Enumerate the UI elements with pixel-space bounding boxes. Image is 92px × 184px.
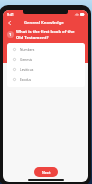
button[interactable]: Leviticus [7,64,85,74]
staticText: General Knowledge [24,20,64,26]
staticText: Numbers [20,47,35,51]
button[interactable]: Numbers [7,44,85,54]
staticText: Next [42,170,51,175]
staticText: Leviticus [20,67,34,71]
staticText: 1 [9,32,12,37]
button[interactable]: Genesis [7,54,85,64]
button[interactable]: Exodus [7,74,85,84]
staticText: 9:41 [7,12,14,17]
staticText: Exodus [20,77,32,81]
staticText: Genesis [20,57,33,61]
button[interactable]: Next [34,167,58,177]
staticText: What is the first book of the Old Testam… [16,29,78,40]
button[interactable]: Back [5,18,14,27]
